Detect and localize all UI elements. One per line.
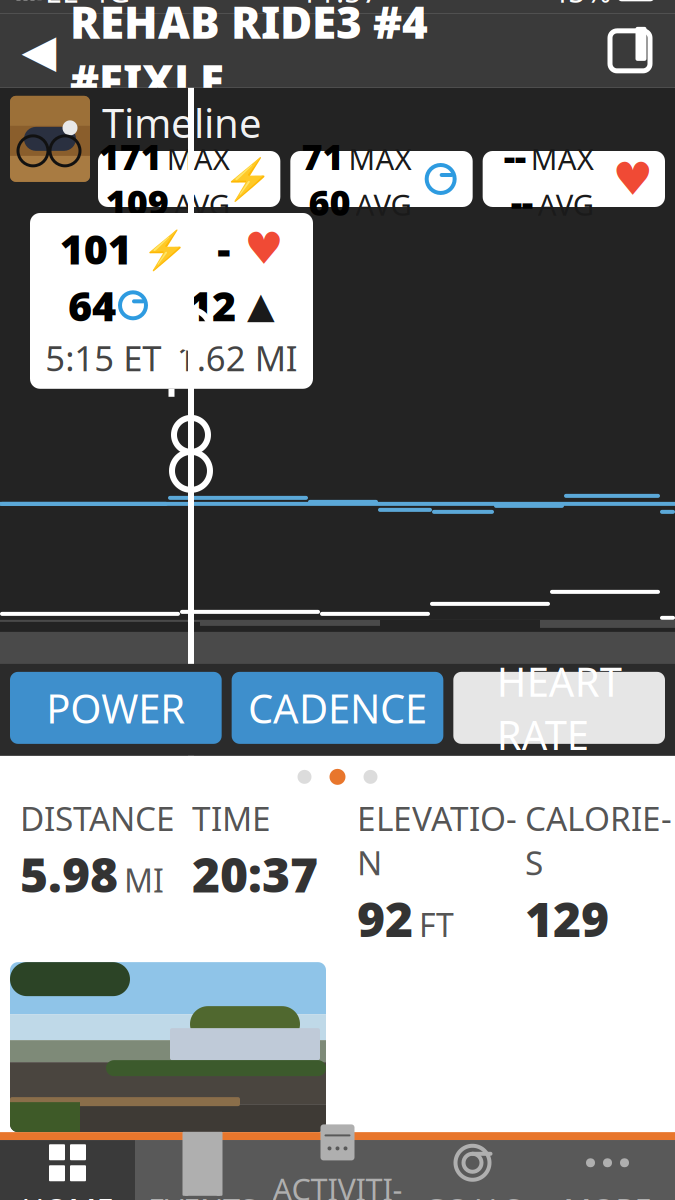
staticText: ⚡ xyxy=(132,224,188,273)
staticText: 5.98 xyxy=(20,842,118,906)
staticText: 71 xyxy=(301,132,343,180)
button[interactable]: HEART RATE xyxy=(453,672,665,744)
staticText: -- xyxy=(504,132,526,180)
staticText: REHAB RIDE3 #4 #FIXLE... xyxy=(70,0,439,109)
staticText: CADENCE xyxy=(248,681,427,734)
staticText: HEART RATE xyxy=(497,655,622,761)
staticText: 109 xyxy=(106,178,169,226)
staticText: EE xyxy=(45,0,79,11)
staticText: POWER xyxy=(46,681,185,734)
button[interactable]: POWER xyxy=(10,672,222,744)
button[interactable]: HOME xyxy=(0,1140,135,1200)
staticText: MAX xyxy=(167,139,230,178)
staticText: 1.62 MI xyxy=(177,335,298,381)
staticText: MORE xyxy=(563,1189,651,1200)
button[interactable]: CADENCE xyxy=(232,672,443,744)
staticText: MAX xyxy=(531,139,594,178)
staticText: FT xyxy=(419,903,454,946)
staticText: 20:37 xyxy=(192,842,318,906)
button[interactable]: Back xyxy=(8,16,70,86)
staticText: ♥ xyxy=(612,153,653,205)
staticText: 4G xyxy=(90,0,130,11)
staticText: ♥ xyxy=(230,223,283,273)
staticText: 92 xyxy=(357,886,413,950)
staticText: - xyxy=(217,221,230,276)
button[interactable]: EVENTS xyxy=(135,1140,270,1200)
button[interactable]: ACTIVITIES xyxy=(270,1140,405,1200)
staticText: ACTIVITIES xyxy=(272,1168,402,1200)
staticText: AVG xyxy=(355,185,411,224)
staticText: 12 xyxy=(188,278,236,333)
staticText: ▲ xyxy=(236,285,275,326)
staticText: 11:57 xyxy=(300,0,380,11)
staticText: GOALS xyxy=(423,1189,521,1200)
staticText: 171 xyxy=(99,132,162,180)
staticText: 5:15 ET xyxy=(45,335,161,381)
staticText: ◀ xyxy=(21,25,56,77)
staticText: AVG xyxy=(538,185,594,224)
staticText: DISTANCE xyxy=(20,796,175,840)
staticText: HOME xyxy=(21,1189,113,1200)
staticText: ELEVATION xyxy=(357,796,517,884)
staticText: MI xyxy=(124,859,164,901)
staticText: 101 xyxy=(60,221,132,276)
staticText: ⚡ xyxy=(223,156,273,202)
staticText: EVENTS xyxy=(148,1189,257,1200)
staticText: 60 xyxy=(308,178,350,226)
staticText: TIME xyxy=(192,796,271,840)
staticText: -- xyxy=(511,178,533,226)
staticText: Timeline xyxy=(102,96,262,149)
staticText: 45% xyxy=(550,0,611,11)
staticText: CALORIES xyxy=(525,796,672,884)
staticText: 64 xyxy=(68,278,116,333)
button[interactable]: GOALS xyxy=(405,1140,540,1200)
staticText: AVG xyxy=(174,185,230,224)
button[interactable]: MORE xyxy=(540,1140,675,1200)
button[interactable]: Edit xyxy=(595,16,665,86)
staticText: MAX xyxy=(348,139,411,178)
staticText: 129 xyxy=(525,886,609,950)
